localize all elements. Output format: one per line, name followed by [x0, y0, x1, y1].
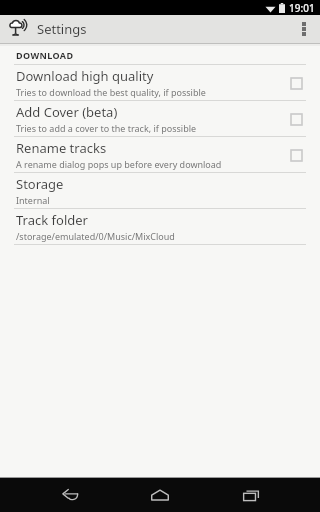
staticText: Add Cover (beta) — [16, 103, 118, 121]
staticText: Tries to add a cover to the track, if po… — [16, 122, 197, 134]
staticText: Rename tracks — [16, 139, 107, 157]
staticText: Tries to download the best quality, if p… — [16, 86, 206, 98]
button[interactable]: Recent apps — [229, 478, 273, 512]
staticText: Internal — [16, 194, 50, 206]
staticText: /storage/emulated/0/Music/MixCloud — [16, 230, 175, 242]
button[interactable]: Rename tracks — [0, 137, 320, 172]
staticText: DOWNLOAD — [16, 49, 74, 61]
button[interactable]: App icon — [7, 18, 29, 40]
staticText: Storage — [16, 175, 64, 193]
button[interactable]: More options — [292, 17, 316, 41]
staticText: A rename dialog pops up before every dow… — [16, 158, 222, 170]
button[interactable]: Download high quality toggle — [284, 71, 308, 95]
button[interactable]: Back — [47, 478, 91, 512]
button[interactable]: Storage — [0, 173, 320, 208]
button[interactable]: Rename tracks toggle — [284, 143, 308, 167]
staticText: Settings — [37, 20, 87, 38]
button[interactable]: Add Cover (beta) — [0, 101, 320, 136]
button[interactable]: Add Cover (beta) toggle — [284, 107, 308, 131]
staticText: 19:01 — [289, 1, 315, 15]
button[interactable]: Track folder — [0, 209, 320, 244]
button[interactable]: Home — [138, 478, 182, 512]
staticText: Track folder — [16, 211, 88, 229]
button[interactable]: Download high quality — [0, 65, 320, 100]
staticText: Download high quality — [16, 67, 154, 85]
